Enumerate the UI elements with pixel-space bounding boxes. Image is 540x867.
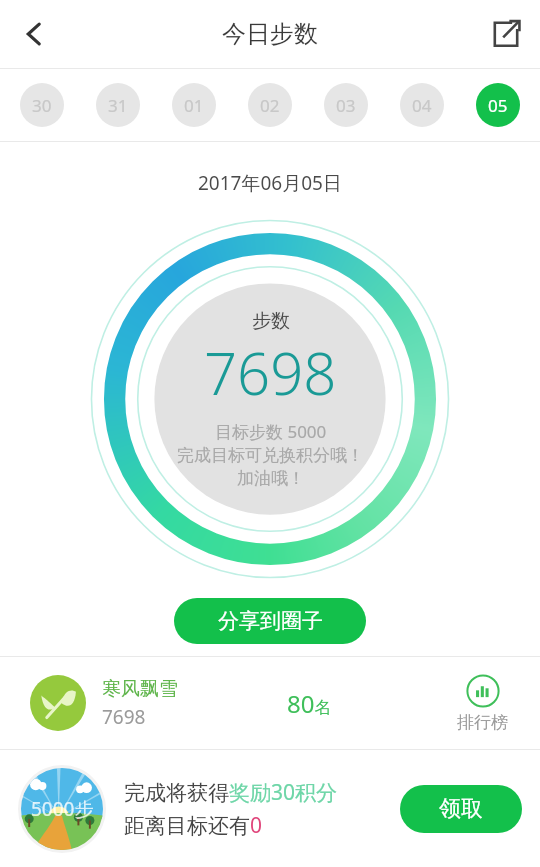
staticText: 分享到圈子 (218, 608, 323, 634)
button[interactable]: 05 (476, 83, 520, 127)
staticText: 31 (108, 94, 128, 117)
staticText: 03 (336, 94, 356, 117)
staticText: 04 (412, 94, 432, 117)
button[interactable]: 寒风飘雪 (0, 657, 540, 749)
staticText: 领取 (439, 795, 483, 823)
button[interactable]: 领取 (400, 785, 522, 833)
button[interactable]: 04 (400, 83, 444, 127)
staticText: 05 (488, 94, 508, 117)
staticText: 80名 (287, 687, 332, 720)
staticText: 完成目标可兑换积分哦！ (177, 445, 364, 466)
staticText: 加油哦！ (237, 468, 305, 489)
button[interactable]: Share (480, 8, 532, 60)
staticText: 7698 (204, 333, 337, 412)
staticText: 01 (184, 94, 204, 117)
button[interactable]: 分享到圈子 (174, 598, 366, 644)
staticText: 完成将获得奖励30积分 (124, 778, 338, 807)
staticText: 2017年06月05日 (198, 170, 342, 196)
staticText: 30 (32, 94, 52, 117)
button[interactable]: Back (6, 6, 62, 62)
staticText: 今日步数 (222, 19, 318, 49)
staticText: 目标步数 5000 (215, 420, 327, 443)
button[interactable]: 03 (324, 83, 368, 127)
staticText: 距离目标还有0 (124, 811, 263, 840)
staticText: 排行榜 (457, 712, 508, 733)
staticText: 寒风飘雪 (102, 677, 178, 701)
staticText: 5000步 (31, 796, 94, 822)
staticText: 7698 (102, 704, 146, 730)
button[interactable]: 排行榜 (451, 674, 514, 733)
button[interactable]: 30 (20, 83, 64, 127)
button[interactable]: 31 (96, 83, 140, 127)
button[interactable]: 02 (248, 83, 292, 127)
staticText: 步数 (252, 309, 290, 333)
staticText: 02 (260, 94, 280, 117)
button[interactable]: 01 (172, 83, 216, 127)
